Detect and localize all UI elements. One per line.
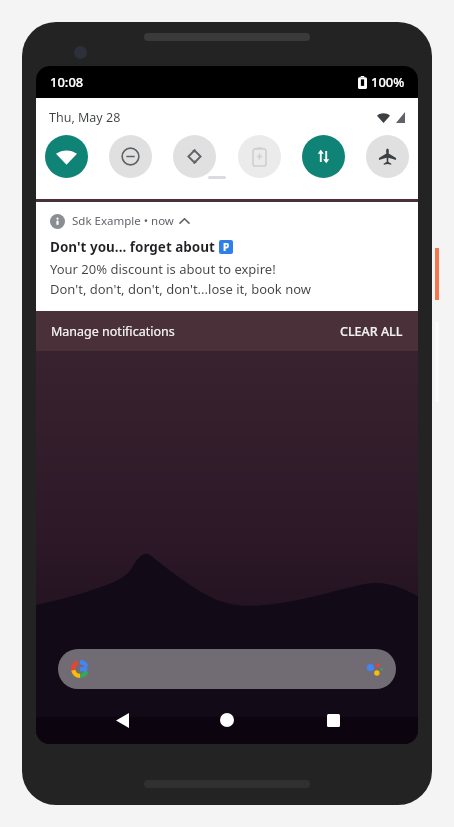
other: Battery saver	[253, 147, 266, 166]
button[interactable]: Auto-rotate	[173, 135, 216, 178]
button[interactable]: Sdk Example • now	[36, 202, 418, 311]
other: Auto-rotate	[185, 147, 204, 166]
button[interactable]: Mobile data	[302, 135, 345, 178]
other: Airplane mode	[378, 147, 397, 166]
button[interactable]: Recent apps	[313, 700, 353, 740]
button[interactable]: CLEAR ALL	[340, 319, 403, 344]
staticText: 100%	[371, 73, 405, 91]
staticText: Thu, May 28	[49, 109, 121, 126]
staticText: Your 20% discount is about to expire!	[50, 260, 276, 278]
button[interactable]: Airplane mode	[366, 135, 409, 178]
other: Do not disturb	[121, 147, 140, 166]
staticText: 10:08	[50, 73, 84, 91]
staticText: Sdk Example • now	[72, 213, 174, 229]
button[interactable]: Battery saver	[238, 135, 281, 178]
staticText: Don't, don't, don't, don't...lose it, bo…	[50, 280, 312, 298]
button[interactable]: Do not disturb	[109, 135, 152, 178]
button[interactable]: Back	[102, 700, 142, 740]
button[interactable]: Google search	[58, 649, 396, 689]
staticText: Don't you... forget about	[50, 238, 219, 256]
staticText: P	[223, 240, 230, 254]
staticText: Manage notifications	[51, 323, 175, 340]
button[interactable]: Manage notifications	[51, 319, 175, 344]
button[interactable]: Home	[207, 700, 247, 740]
other: Mobile data	[315, 148, 332, 165]
staticText: CLEAR ALL	[340, 323, 403, 340]
button[interactable]: Wi-Fi	[45, 135, 88, 178]
other: Wi-Fi	[56, 149, 77, 165]
